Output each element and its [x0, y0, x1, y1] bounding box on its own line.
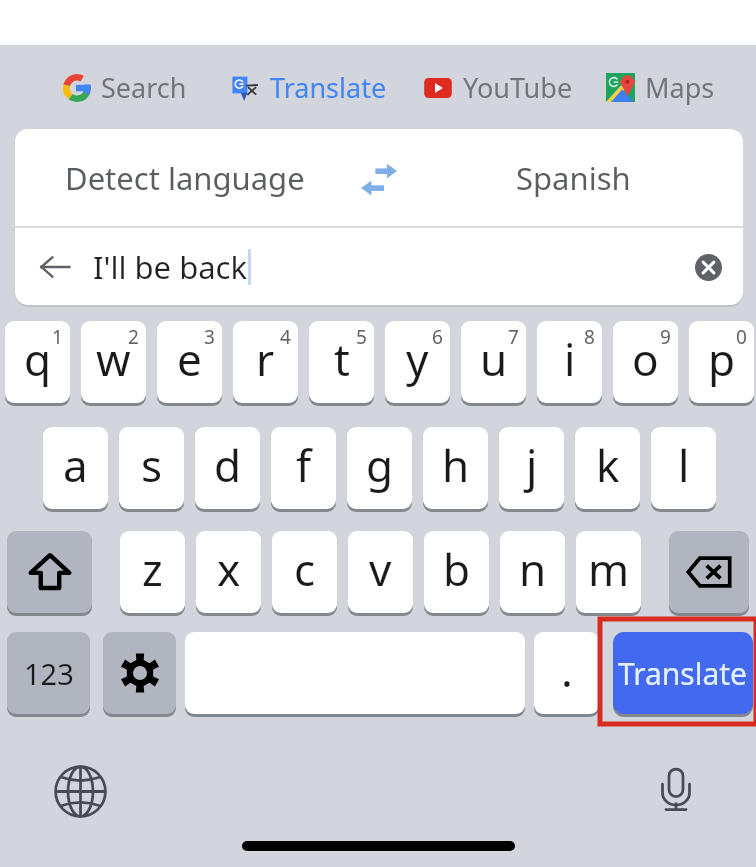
button[interactable]: Shift	[7, 531, 92, 613]
staticText: w	[96, 329, 131, 389]
staticText: m	[588, 539, 630, 599]
staticText: i	[564, 329, 576, 389]
staticText: s	[141, 435, 163, 495]
button[interactable]: j	[499, 427, 564, 509]
staticText: 2	[128, 324, 139, 350]
button[interactable]: t	[309, 321, 374, 403]
staticText: Spanish	[516, 157, 631, 199]
button[interactable]: r	[233, 321, 298, 403]
staticText: o	[632, 329, 659, 389]
button[interactable]: Spanish	[404, 129, 743, 226]
button[interactable]: d	[195, 427, 260, 509]
button[interactable]: b	[424, 531, 489, 613]
staticText: t	[334, 329, 350, 389]
button[interactable]: z	[120, 531, 185, 613]
button[interactable]: Space	[185, 632, 525, 714]
staticText: z	[142, 539, 163, 599]
staticText: a	[63, 435, 88, 495]
button[interactable]: h	[423, 427, 488, 509]
button[interactable]: g	[347, 427, 412, 509]
button[interactable]: 123	[7, 632, 90, 714]
button[interactable]: YouTube	[423, 69, 573, 106]
button[interactable]: w	[81, 321, 146, 403]
staticText: k	[596, 435, 620, 495]
button[interactable]: Clear	[685, 244, 731, 290]
staticText: Translate	[270, 69, 387, 106]
staticText: Search	[101, 69, 187, 106]
staticText: h	[442, 435, 470, 495]
staticText: Translate	[618, 653, 748, 694]
staticText: 4	[280, 324, 291, 350]
button[interactable]: Maps	[606, 69, 715, 106]
button[interactable]: v	[348, 531, 413, 613]
button[interactable]: Back	[33, 245, 77, 289]
staticText: u	[480, 329, 508, 389]
staticText: 0	[736, 324, 747, 350]
button[interactable]: Settings	[103, 632, 176, 714]
button[interactable]: .	[534, 632, 599, 714]
staticText: l	[678, 435, 690, 495]
staticText: y	[406, 329, 429, 389]
staticText: 6	[432, 324, 443, 350]
button[interactable]: i	[537, 321, 602, 403]
button[interactable]: Backspace	[669, 531, 749, 613]
button[interactable]: p	[689, 321, 754, 403]
staticText: 3	[204, 324, 215, 350]
staticText: .	[561, 640, 573, 700]
button[interactable]: l	[651, 427, 716, 509]
staticText: p	[708, 329, 736, 389]
staticText: d	[214, 435, 242, 495]
button[interactable]: Voice input	[642, 755, 710, 823]
staticText: v	[369, 539, 392, 599]
button[interactable]: o	[613, 321, 678, 403]
button[interactable]: m	[576, 531, 641, 613]
button[interactable]: Translate	[230, 69, 387, 106]
staticText: q	[24, 329, 52, 389]
staticText: YouTube	[463, 69, 573, 106]
button[interactable]: Search	[63, 69, 187, 106]
staticText: j	[526, 435, 538, 495]
staticText: I'll be back	[93, 246, 248, 288]
staticText: 9	[660, 324, 671, 350]
staticText: g	[366, 435, 394, 495]
staticText: 123	[24, 654, 74, 693]
staticText: b	[443, 539, 471, 599]
button[interactable]: x	[196, 531, 261, 613]
staticText: r	[256, 329, 275, 389]
button[interactable]: f	[271, 427, 336, 509]
button[interactable]: e	[157, 321, 222, 403]
staticText: Maps	[645, 69, 715, 106]
staticText: 1	[52, 324, 63, 350]
staticText: x	[217, 539, 241, 599]
button[interactable]: s	[119, 427, 184, 509]
staticText: 7	[508, 324, 519, 350]
staticText: c	[294, 539, 316, 599]
button[interactable]: Change language	[46, 757, 114, 825]
button[interactable]: k	[575, 427, 640, 509]
staticText: 8	[584, 324, 595, 350]
staticText: e	[177, 329, 202, 389]
button[interactable]: Swap languages	[354, 129, 404, 226]
staticText: f	[296, 435, 312, 495]
button[interactable]: u	[461, 321, 526, 403]
button[interactable]: a	[43, 427, 108, 509]
button[interactable]: Detect language	[15, 129, 354, 226]
button[interactable]: q	[5, 321, 70, 403]
staticText: Detect language	[65, 157, 305, 199]
button[interactable]: y	[385, 321, 450, 403]
button[interactable]: Translate	[613, 632, 753, 714]
staticText: n	[519, 539, 547, 599]
button[interactable]: n	[500, 531, 565, 613]
staticText: 5	[356, 324, 367, 350]
button[interactable]: c	[272, 531, 337, 613]
